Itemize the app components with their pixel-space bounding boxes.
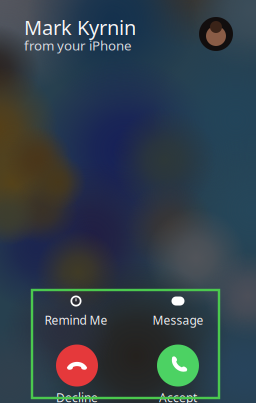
staticText: from your iPhone <box>24 36 132 54</box>
button[interactable]: Message <box>133 294 223 328</box>
button[interactable]: Accept <box>133 344 223 403</box>
staticText: Accept <box>159 389 197 403</box>
staticText: Remind Me <box>44 312 107 328</box>
button[interactable]: Remind Me <box>31 294 121 328</box>
staticText: Message <box>152 312 203 328</box>
staticText: Mark Kyrnin <box>24 14 136 40</box>
button[interactable]: Decline <box>32 344 122 403</box>
staticText: Decline <box>56 389 98 403</box>
